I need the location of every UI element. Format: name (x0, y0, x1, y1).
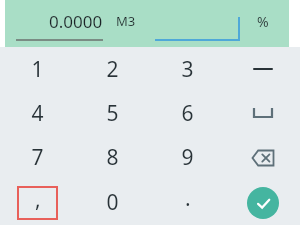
staticText: 7 (31, 143, 44, 172)
button[interactable]: , (19, 188, 56, 218)
button[interactable]: 7 (0, 135, 75, 180)
staticText: 2 (106, 55, 119, 84)
button[interactable]: 2 (75, 47, 150, 91)
button[interactable]: Minus (225, 47, 300, 91)
button[interactable]: Backspace (225, 135, 300, 180)
staticText: 0 (106, 188, 119, 217)
staticText: 0.0000 (49, 10, 103, 33)
staticText: . (185, 184, 191, 213)
button[interactable] (155, 8, 240, 41)
button[interactable]: 0.0000 (16, 8, 103, 41)
button[interactable]: 1 (0, 47, 75, 91)
button[interactable]: 5 (75, 91, 150, 135)
staticText: % (257, 12, 269, 31)
staticText: 5 (106, 99, 119, 128)
staticText: 4 (31, 99, 44, 128)
button[interactable]: 0 (75, 180, 150, 225)
button[interactable]: 9 (150, 135, 225, 180)
button[interactable]: 3 (150, 47, 225, 91)
staticText: 1 (31, 55, 44, 84)
staticText: 8 (106, 143, 119, 172)
staticText: 6 (181, 99, 194, 128)
staticText: М3 (116, 12, 136, 30)
staticText: , (35, 185, 41, 214)
button[interactable]: 4 (0, 91, 75, 135)
button[interactable]: 6 (150, 91, 225, 135)
button[interactable]: 8 (75, 135, 150, 180)
staticText: 3 (181, 55, 194, 84)
button[interactable]: Space (225, 91, 300, 135)
staticText: 9 (181, 143, 194, 172)
button[interactable]: Confirm (247, 187, 279, 219)
button[interactable]: . (150, 180, 225, 225)
